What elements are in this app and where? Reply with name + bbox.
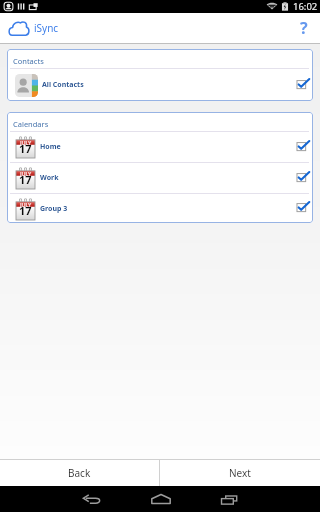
staticText: ? (300, 17, 308, 39)
staticText: JULY (20, 140, 32, 147)
staticText: Home (40, 142, 61, 152)
staticText: 17 (19, 203, 32, 218)
staticText: Work (40, 173, 59, 183)
staticText: JULY (20, 171, 32, 178)
button[interactable]: Next (160, 460, 320, 486)
staticText: iSync (34, 21, 59, 35)
button[interactable]: Back (57, 486, 126, 512)
button[interactable]: Back (0, 460, 159, 486)
staticText: Group 3 (40, 204, 68, 214)
staticText: 16:02 (293, 0, 318, 13)
staticText: Next (229, 466, 251, 480)
staticText: 17 (19, 141, 32, 156)
button[interactable]: JULY (7, 194, 313, 223)
staticText: All Contacts (42, 80, 84, 90)
button[interactable]: JULY (7, 163, 313, 193)
button[interactable]: Help (293, 17, 315, 39)
button[interactable]: JULY (7, 132, 313, 162)
staticText: Calendars (13, 119, 49, 129)
staticText: Back (68, 466, 91, 480)
staticText: JULY (20, 202, 32, 209)
button[interactable]: Home (126, 486, 195, 512)
button[interactable]: Recent apps (195, 486, 264, 512)
staticText: Contacts (13, 56, 44, 66)
staticText: 17 (19, 172, 32, 187)
button[interactable]: All Contacts (7, 69, 313, 101)
